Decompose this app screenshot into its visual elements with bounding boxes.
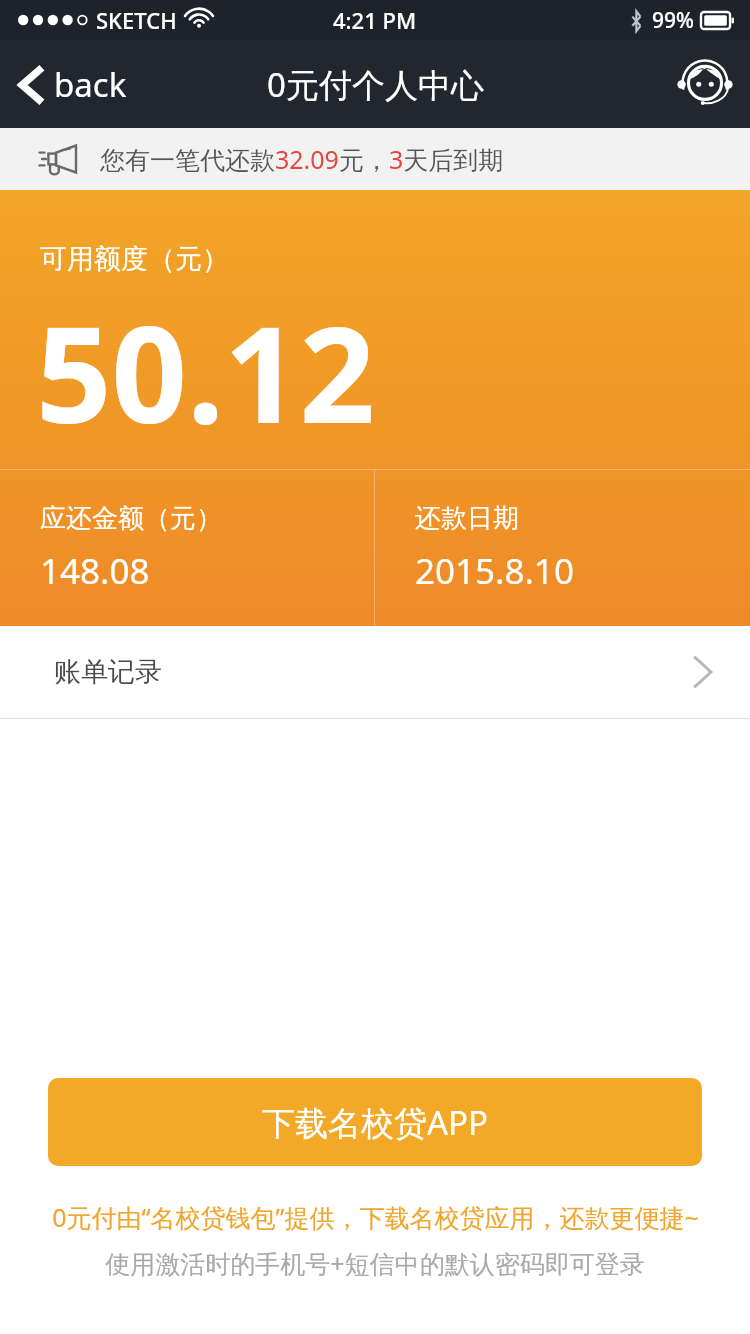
button[interactable]: Customer service [674, 53, 736, 115]
staticText: 99% [652, 6, 694, 35]
button[interactable]: 账单记录 [0, 626, 750, 718]
staticText: 您有一笔代还款32.09元，3天后到期 [100, 142, 504, 176]
staticText: 0元付个人中心 [267, 62, 484, 107]
staticText: 账单记录 [54, 655, 162, 689]
button[interactable]: 还款日期 [375, 470, 750, 626]
staticText: 0元付由“名校贷钱包”提供，下载名校贷应用，还款更便捷~ [52, 1200, 699, 1234]
staticText: 50.12 [36, 282, 376, 462]
staticText: 使用激活时的手机号+短信中的默认密码即可登录 [105, 1246, 645, 1280]
staticText: SKETCH [96, 5, 177, 35]
staticText: 下载名校贷APP [262, 1100, 489, 1145]
staticText: 还款日期 [415, 502, 519, 535]
button[interactable]: 您有一笔代还款32.09元，3天后到期 [0, 128, 750, 190]
button[interactable]: 下载名校贷APP [48, 1078, 702, 1166]
staticText: 2015.8.10 [415, 547, 574, 595]
button[interactable]: 应还金额（元） [0, 470, 374, 626]
staticText: 148.08 [40, 547, 150, 595]
staticText: 可用额度（元） [40, 242, 229, 276]
staticText: 应还金额（元） [40, 502, 222, 535]
staticText: back [54, 62, 127, 107]
staticText: 4:21 PM [333, 5, 417, 35]
button[interactable]: back [0, 50, 145, 119]
